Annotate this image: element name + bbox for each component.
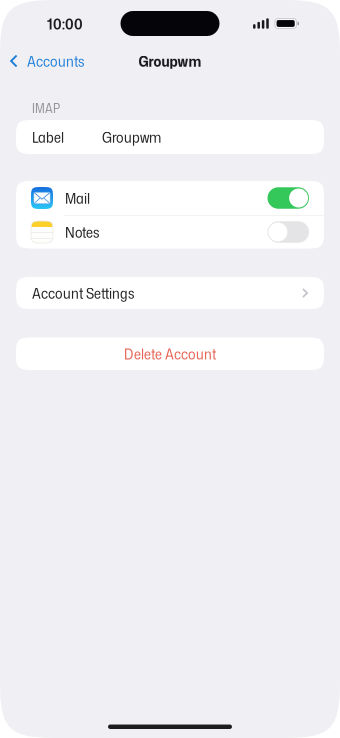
staticText: Delete Account: [124, 343, 216, 364]
staticText: Account Settings: [32, 283, 134, 303]
button[interactable]: Accounts: [0, 46, 92, 76]
staticText: 10:00: [47, 13, 83, 34]
staticText: Mail: [65, 188, 90, 208]
staticText: Notes: [65, 222, 99, 242]
button[interactable]: Delete Account: [0, 337, 340, 370]
staticText: IMAP: [32, 99, 60, 117]
staticText: Accounts: [27, 51, 84, 71]
staticText: Groupwm: [102, 127, 161, 147]
staticText: Groupwm: [138, 51, 201, 71]
staticText: Label: [32, 127, 64, 147]
button[interactable]: Account Settings: [0, 277, 340, 309]
